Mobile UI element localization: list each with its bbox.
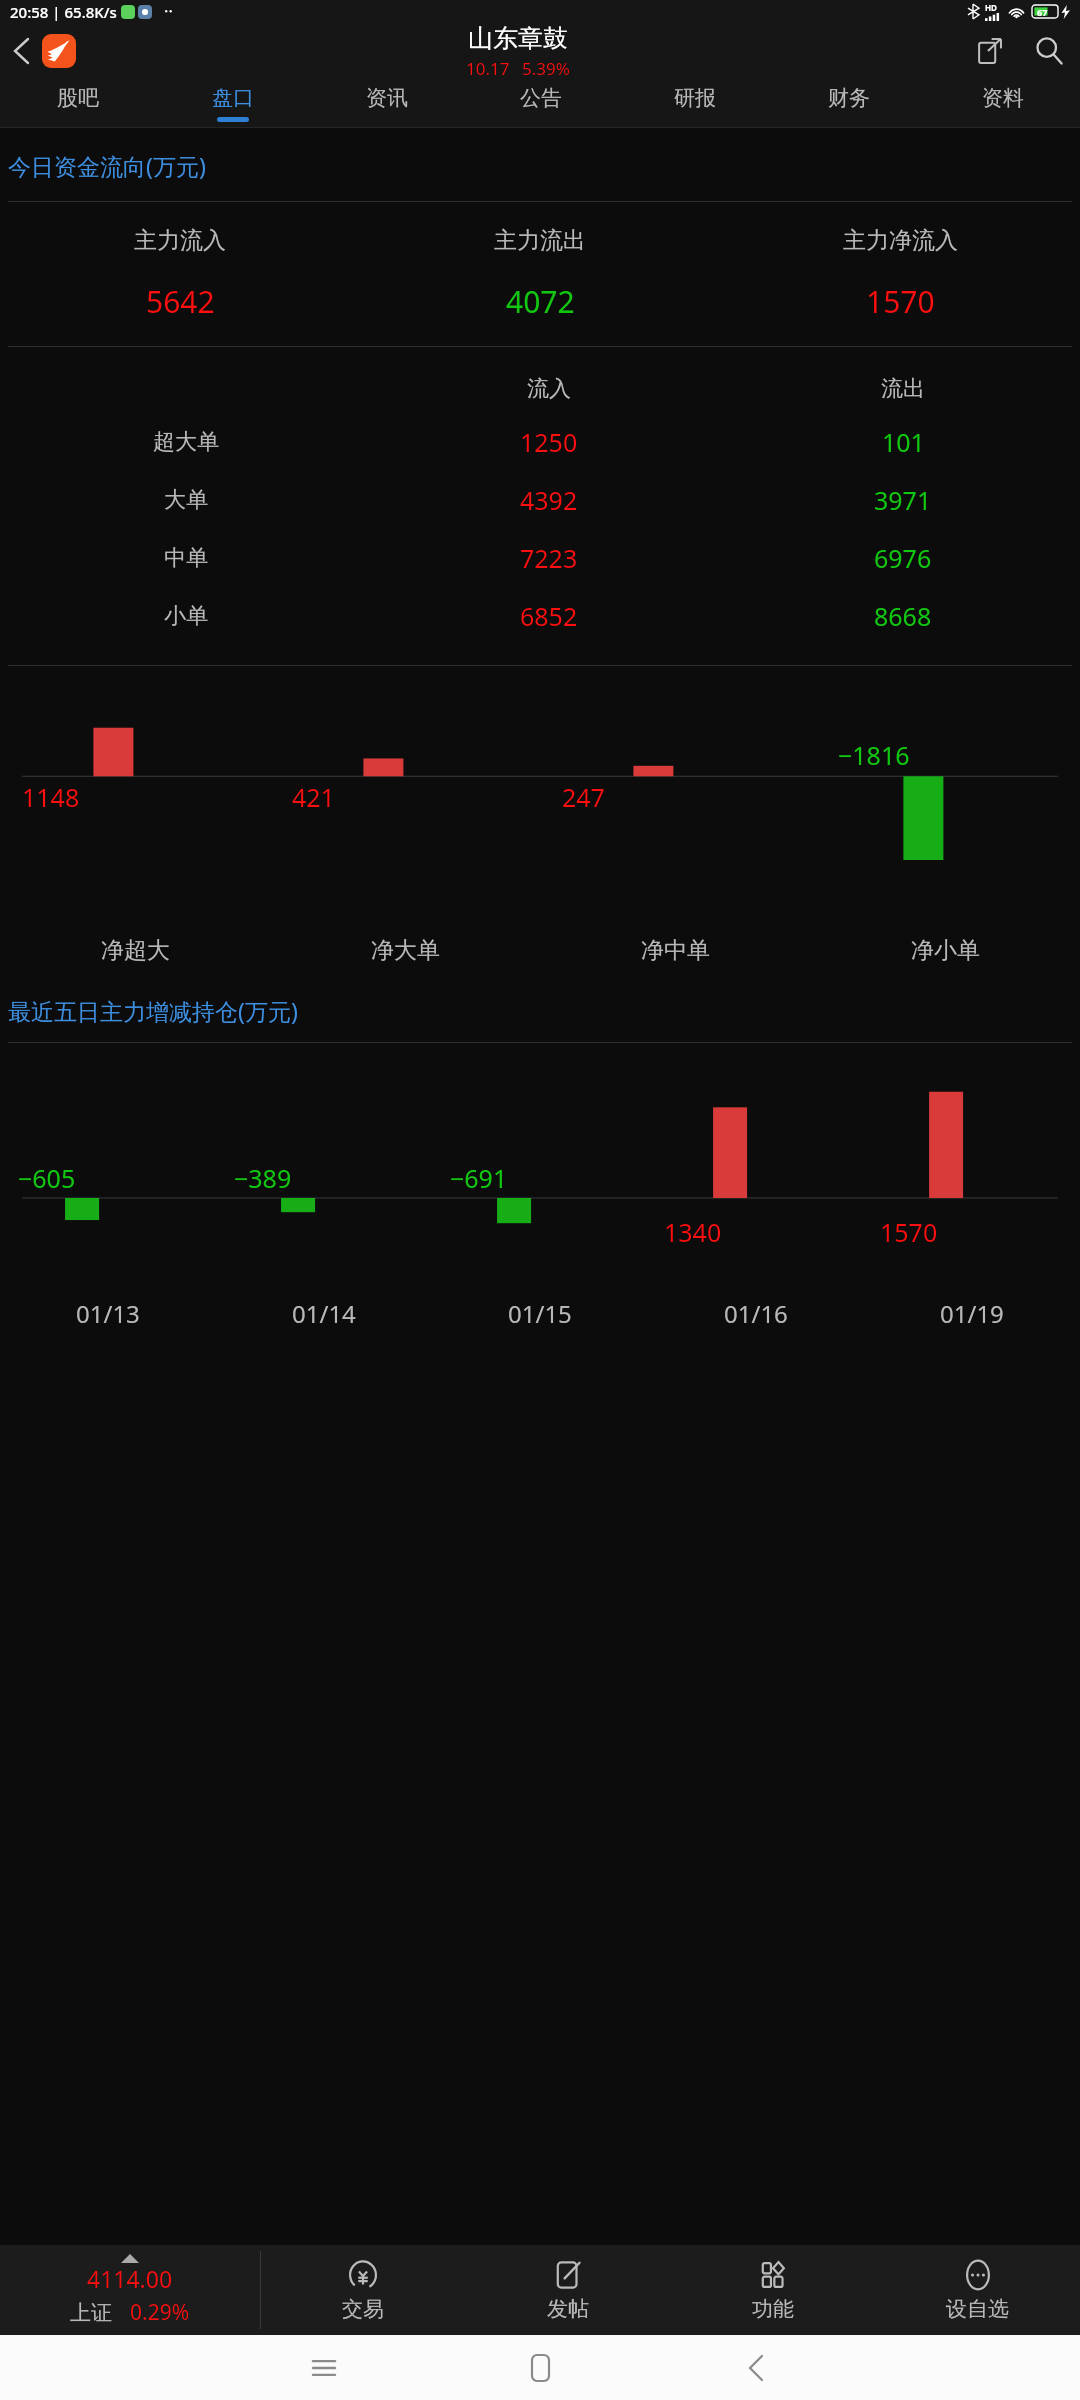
- staticText: 1148: [22, 780, 80, 814]
- staticText: 0.29%: [130, 2298, 190, 2327]
- staticText: 6976: [874, 541, 932, 575]
- staticText: 421: [292, 780, 335, 814]
- staticText: 1340: [664, 1215, 722, 1249]
- staticText: 01/15: [508, 1297, 572, 1330]
- staticText: 研报: [674, 85, 716, 111]
- staticText: 交易: [342, 2296, 384, 2322]
- button[interactable]: 财务: [772, 79, 926, 117]
- staticText: 大单: [164, 486, 208, 514]
- staticText: 1570: [880, 1215, 938, 1249]
- button[interactable]: Search: [1018, 23, 1080, 79]
- button[interactable]: 交易: [261, 2245, 465, 2335]
- staticText: 67: [1037, 6, 1048, 18]
- staticText: 资讯: [366, 85, 408, 111]
- staticText: 功能: [752, 2296, 794, 2322]
- staticText: 4114.00: [87, 2263, 173, 2294]
- staticText: 小单: [164, 602, 208, 630]
- staticText: 净大单: [371, 936, 440, 965]
- staticText: 主力流入: [134, 226, 226, 255]
- button[interactable]: 资料: [926, 79, 1080, 117]
- staticText: 山东章鼓: [468, 23, 568, 54]
- staticText: −389: [234, 1161, 292, 1195]
- staticText: 公告: [520, 85, 562, 111]
- staticText: 流入: [527, 375, 571, 403]
- staticText: 8668: [874, 599, 932, 633]
- staticText: 流出: [881, 375, 925, 403]
- staticText: 10.17: [466, 57, 510, 79]
- button[interactable]: 设自选: [875, 2245, 1080, 2335]
- staticText: 上证: [70, 2300, 112, 2326]
- staticText: 净中单: [641, 936, 710, 965]
- staticText: 主力净流入: [843, 226, 958, 255]
- staticText: 净小单: [911, 936, 980, 965]
- staticText: 101: [882, 425, 925, 459]
- staticText: 资料: [982, 85, 1024, 111]
- staticText: 5642: [146, 281, 215, 322]
- button[interactable]: 资讯: [310, 79, 464, 117]
- staticText: 设自选: [946, 2296, 1009, 2322]
- button[interactable]: 盘口: [155, 79, 310, 117]
- staticText: 1570: [866, 281, 935, 322]
- staticText: 股吧: [57, 85, 99, 111]
- staticText: 1250: [520, 425, 578, 459]
- button[interactable]: App logo: [42, 34, 76, 68]
- button[interactable]: Back: [0, 23, 42, 79]
- button[interactable]: 研报: [618, 79, 772, 117]
- staticText: 中单: [164, 544, 208, 572]
- staticText: 7223: [520, 541, 578, 575]
- button[interactable]: 股吧: [0, 79, 155, 117]
- staticText: 发帖: [547, 2296, 589, 2322]
- button[interactable]: Back: [648, 2335, 864, 2400]
- staticText: 主力流出: [494, 226, 586, 255]
- staticText: HD: [985, 2, 997, 13]
- staticText: −691: [450, 1161, 508, 1195]
- staticText: 01/19: [940, 1297, 1004, 1330]
- staticText: 20:58 | 65.8K/s: [10, 2, 117, 22]
- staticText: 247: [562, 780, 605, 814]
- staticText: 01/13: [76, 1297, 140, 1330]
- staticText: 01/16: [724, 1297, 788, 1330]
- staticText: 超大单: [153, 428, 219, 456]
- button[interactable]: 发帖: [465, 2245, 670, 2335]
- staticText: −1816: [838, 738, 910, 772]
- button[interactable]: Home: [432, 2335, 648, 2400]
- staticText: 5.39%: [522, 57, 570, 79]
- staticText: 财务: [828, 85, 870, 111]
- button[interactable]: Share: [960, 23, 1018, 79]
- staticText: 4392: [520, 483, 578, 517]
- staticText: 今日资金流向(万元): [8, 150, 206, 181]
- button[interactable]: 4114.00: [0, 2245, 260, 2335]
- staticText: 3971: [874, 483, 932, 517]
- staticText: 盘口: [212, 85, 254, 111]
- staticText: 4072: [506, 281, 575, 322]
- button[interactable]: 功能: [670, 2245, 875, 2335]
- staticText: 最近五日主力增减持仓(万元): [8, 995, 298, 1026]
- button[interactable]: Recent apps: [216, 2335, 432, 2400]
- staticText: 01/14: [292, 1297, 356, 1330]
- button[interactable]: 公告: [464, 79, 618, 117]
- staticText: −605: [18, 1161, 76, 1195]
- staticText: 净超大: [101, 936, 170, 965]
- staticText: 6852: [520, 599, 578, 633]
